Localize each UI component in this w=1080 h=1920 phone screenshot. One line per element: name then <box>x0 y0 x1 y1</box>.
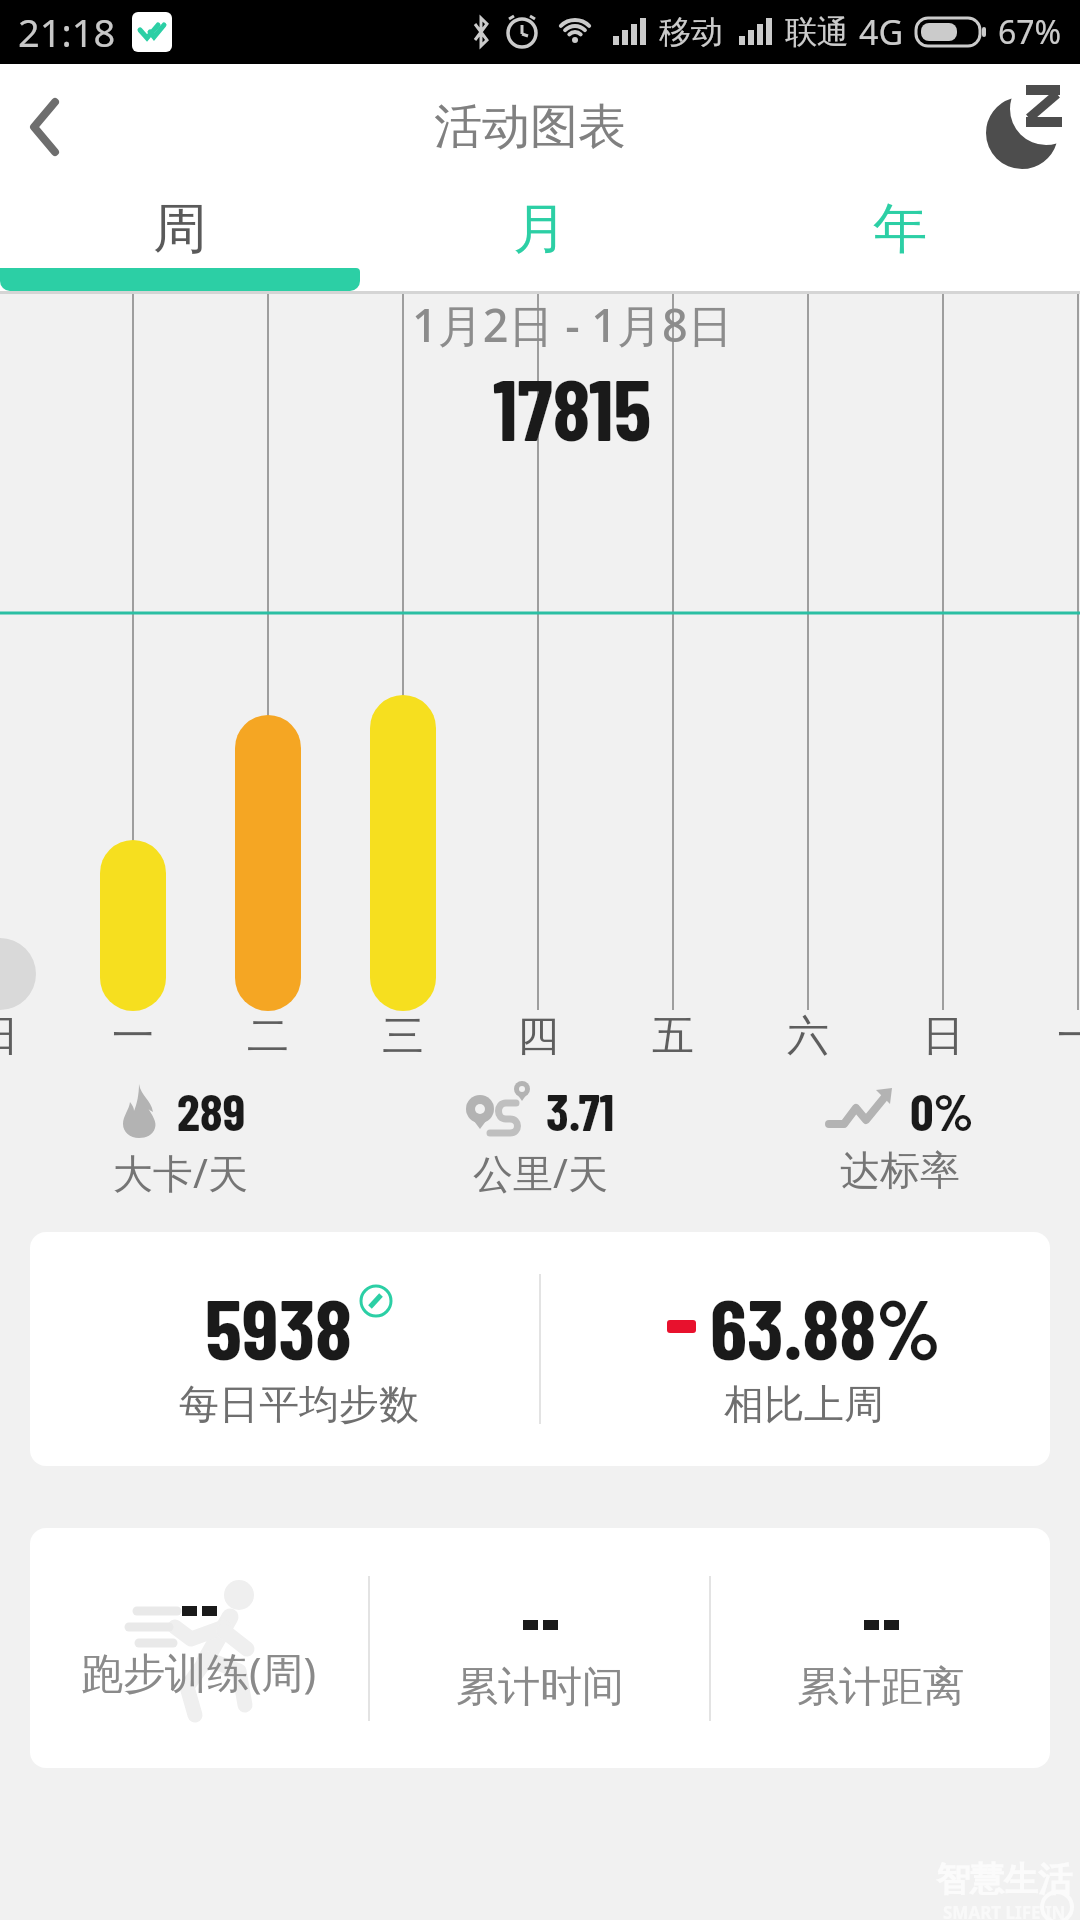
staticText: 联通 <box>785 12 849 52</box>
staticText: 日 <box>0 1010 19 1063</box>
staticText: 二 <box>247 1010 289 1063</box>
staticText: 周 <box>153 195 207 263</box>
staticText: 5938 <box>205 1276 353 1377</box>
staticText: 月 <box>513 195 567 263</box>
button[interactable]: 月 <box>360 190 720 268</box>
staticText: 六 <box>787 1010 829 1063</box>
staticText: 活动图表 <box>434 97 626 157</box>
button[interactable]: 周 <box>0 190 360 268</box>
staticText: 289 <box>177 1079 246 1141</box>
staticText: 四 <box>517 1010 559 1063</box>
staticText: 63.88% <box>710 1276 941 1377</box>
staticText: 年 <box>873 195 927 263</box>
staticText: 相比上周 <box>724 1379 884 1429</box>
staticText: 大卡/天 <box>113 1145 248 1200</box>
staticText: 日 <box>922 1010 964 1063</box>
staticText: 4G <box>859 9 904 55</box>
staticText: 0% <box>910 1079 974 1141</box>
staticText: 一 <box>1057 1010 1080 1063</box>
staticText: 累计时间 <box>456 1661 624 1714</box>
staticText: 智慧生活 <box>936 1858 1072 1901</box>
staticText: 五 <box>652 1010 694 1063</box>
staticText: 公里/天 <box>473 1145 608 1200</box>
button[interactable]: 年 <box>720 190 1080 268</box>
staticText: 三 <box>382 1010 424 1063</box>
staticText: 一 <box>112 1010 154 1063</box>
staticText: 每日平均步数 <box>179 1379 419 1429</box>
staticText: 累计距离 <box>797 1661 965 1714</box>
staticText: SMART LIFE IN <box>943 1901 1066 1920</box>
staticText: 1月2日 - 1月8日 <box>412 294 733 355</box>
staticText: 17815 <box>493 355 652 458</box>
button[interactable]: 跑步训练(周) <box>30 1528 1050 1768</box>
staticText: 21:18 <box>18 6 116 58</box>
button[interactable] <box>970 64 1080 190</box>
staticText: 达标率 <box>840 1145 960 1195</box>
button[interactable]: 5938 <box>30 1232 1050 1466</box>
button[interactable] <box>0 64 90 190</box>
staticText: 67% <box>998 10 1062 54</box>
staticText: 移动 <box>659 12 723 52</box>
staticText: 3.71 <box>546 1079 615 1141</box>
staticText: 跑步训练(周) <box>81 1643 317 1700</box>
